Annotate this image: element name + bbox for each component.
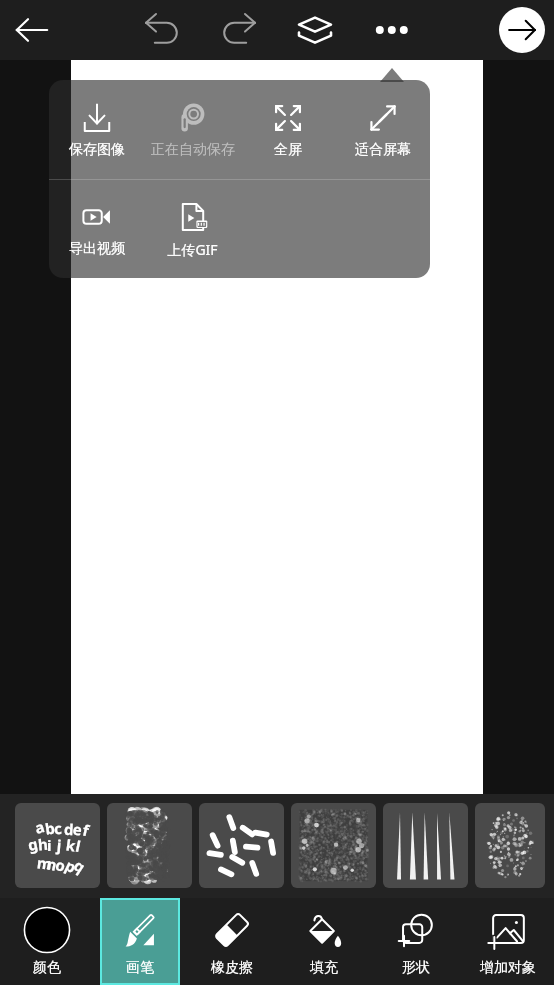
staticText: a [32, 816, 47, 838]
staticText: 橡皮擦 [211, 959, 253, 977]
staticText: 填充 [310, 959, 338, 977]
button[interactable]: 保存图像 [49, 80, 145, 179]
staticText: g [26, 833, 40, 855]
button[interactable]: 正在自动保存 [145, 80, 240, 179]
button[interactable]: Brush 2 [107, 803, 192, 888]
button[interactable]: Brush 5 [383, 803, 468, 888]
button[interactable]: More options [371, 10, 411, 50]
staticText: m [36, 852, 53, 874]
staticText: l [74, 836, 83, 856]
staticText: 全屏 [274, 141, 302, 159]
button[interactable]: 画笔 [100, 898, 180, 985]
staticText: 适合屏幕 [355, 141, 411, 159]
button[interactable]: Redo [219, 10, 259, 50]
button[interactable]: Brush 3 [199, 803, 284, 888]
button[interactable]: 上传GIF [145, 180, 240, 278]
button[interactable]: 形状 [376, 898, 456, 985]
staticText: o [53, 854, 69, 876]
staticText: 保存图像 [69, 141, 125, 159]
staticText: k [65, 834, 77, 856]
button[interactable]: Layers [295, 10, 335, 50]
staticText: j [56, 835, 63, 855]
button[interactable]: Brush 6 [475, 803, 545, 888]
staticText: e [72, 818, 83, 839]
staticText: b [44, 817, 56, 839]
button[interactable]: Undo [142, 10, 182, 50]
staticText: 上传GIF [167, 240, 218, 259]
staticText: d [63, 819, 74, 839]
button[interactable]: Back [12, 10, 52, 50]
staticText: f [81, 820, 91, 840]
staticText: q [70, 855, 90, 877]
button[interactable]: Brush 4 [291, 803, 376, 888]
button[interactable]: 导出视频 [49, 180, 145, 278]
staticText: 颜色 [33, 959, 61, 977]
staticText: p [62, 855, 80, 877]
button[interactable]: 适合屏幕 [335, 80, 430, 179]
button[interactable]: 增加对象 [468, 898, 548, 985]
staticText: 正在自动保存 [151, 141, 235, 159]
button[interactable]: 全屏 [240, 80, 335, 179]
staticText: 形状 [402, 959, 430, 977]
staticText: i [47, 835, 52, 855]
button[interactable]: Brush 1 [15, 803, 100, 888]
staticText: 画笔 [126, 959, 154, 977]
button[interactable]: 颜色 [7, 898, 87, 985]
staticText: h [37, 834, 49, 854]
staticText: 增加对象 [480, 959, 536, 977]
staticText: n [45, 853, 59, 875]
staticText: c [54, 818, 62, 838]
button[interactable]: Next [499, 7, 545, 53]
button[interactable]: 橡皮擦 [192, 898, 272, 985]
staticText: 导出视频 [69, 240, 125, 258]
button[interactable]: 填充 [284, 898, 364, 985]
